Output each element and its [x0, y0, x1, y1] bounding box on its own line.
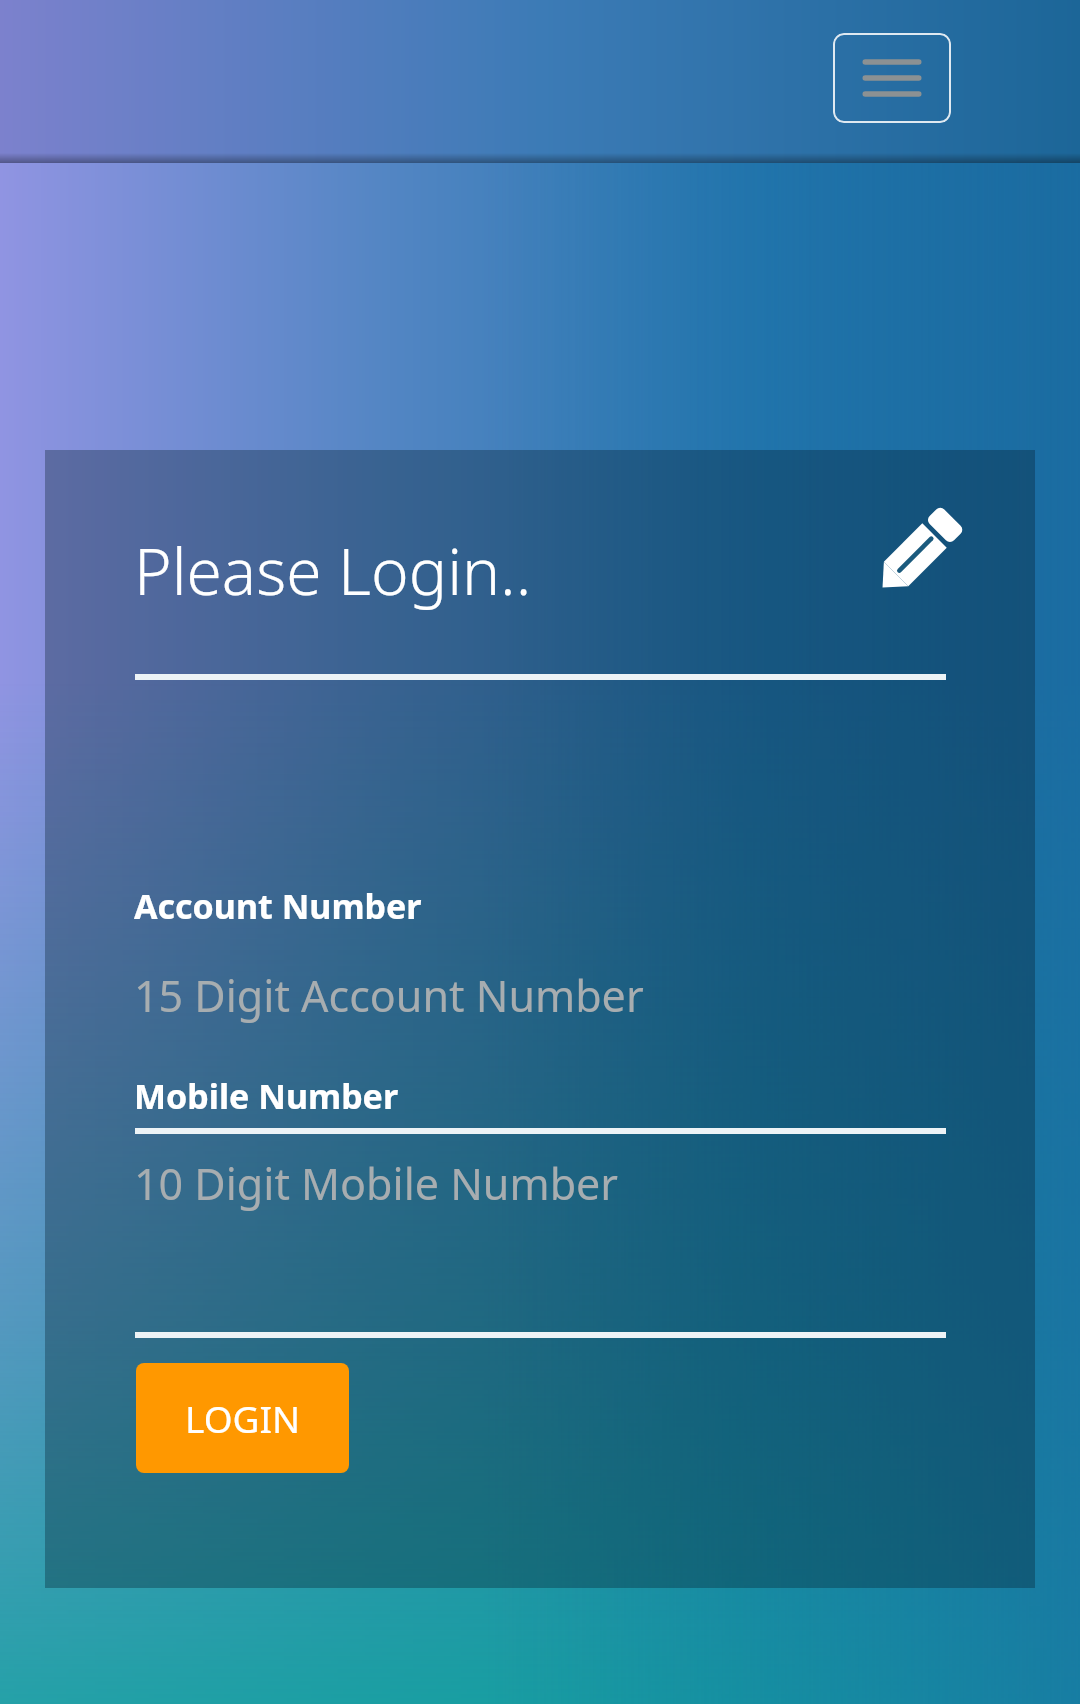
staticText: Account Number [134, 883, 422, 929]
staticText: Mobile Number [134, 1073, 399, 1119]
staticText: Please Login.. [134, 527, 532, 614]
button[interactable]: LOGIN [136, 1363, 349, 1473]
staticText: 15 Digit Account Number [134, 966, 644, 1025]
button[interactable]: 10 Digit Mobile Number [134, 1143, 946, 1223]
staticText: LOGIN [185, 1393, 301, 1443]
button[interactable]: 15 Digit Account Number [134, 955, 946, 1035]
staticText: 10 Digit Mobile Number [134, 1154, 619, 1213]
button[interactable]: Edit [860, 495, 975, 610]
button[interactable]: Open navigation menu [833, 33, 951, 123]
